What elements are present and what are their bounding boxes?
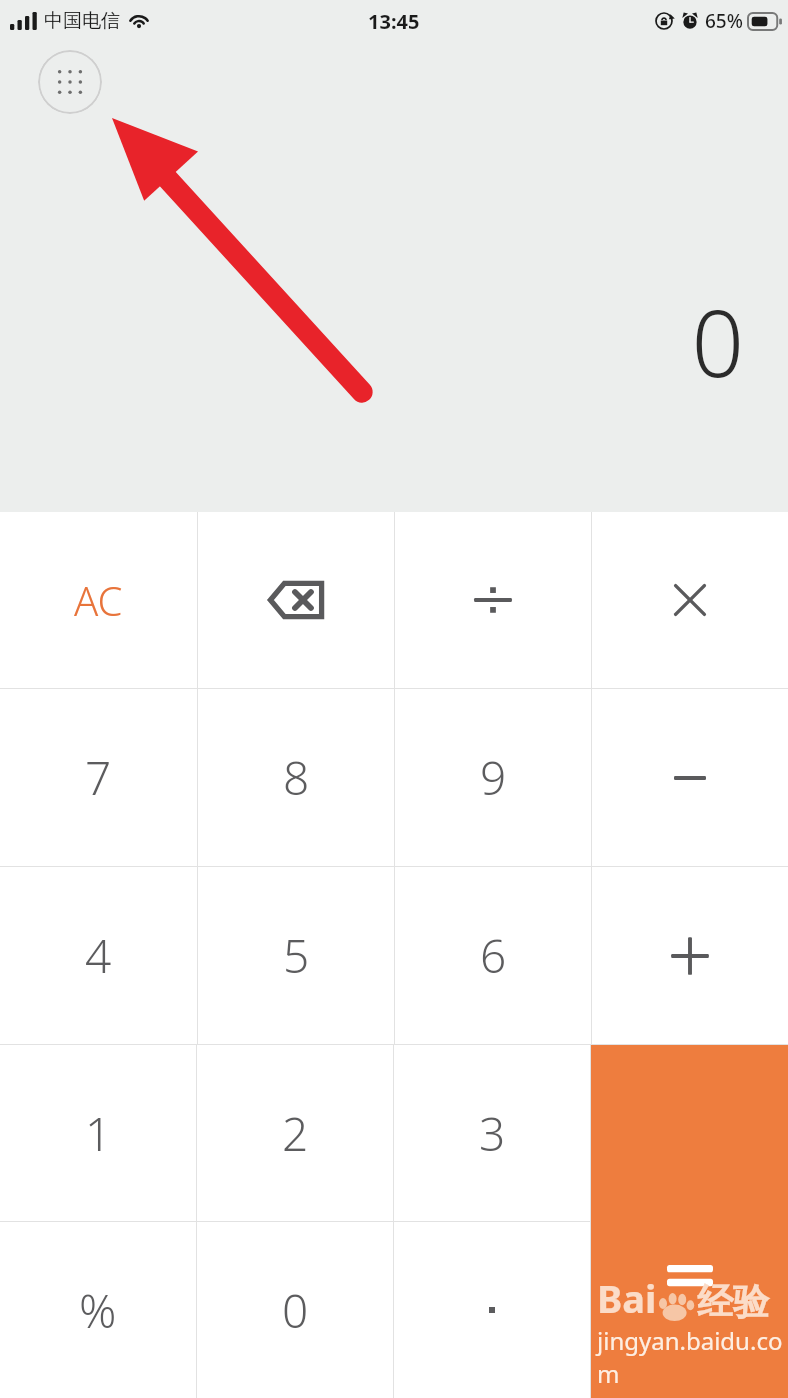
- staticText: 经验: [697, 1279, 769, 1324]
- button[interactable]: AC: [0, 512, 197, 688]
- staticText: 9: [480, 746, 507, 809]
- button[interactable]: 9: [395, 689, 591, 866]
- staticText: 13:45: [368, 8, 420, 35]
- staticText: jingyan.baidu.com: [597, 1324, 788, 1390]
- button[interactable]: 2: [197, 1045, 393, 1221]
- staticText: 8: [283, 746, 310, 809]
- button[interactable]: Equals: [591, 1045, 788, 1398]
- button[interactable]: Minus: [592, 689, 788, 866]
- staticText: 6: [480, 924, 507, 987]
- staticText: 0: [282, 1279, 309, 1342]
- button[interactable]: 6: [395, 867, 591, 1044]
- staticText: 3: [479, 1102, 506, 1165]
- button[interactable]: 8: [198, 689, 394, 866]
- staticText: 5: [283, 924, 310, 987]
- button[interactable]: Multiply: [592, 512, 788, 688]
- button[interactable]: Divide: [395, 512, 591, 688]
- button[interactable]: [394, 1222, 590, 1398]
- button[interactable]: Backspace: [198, 512, 394, 688]
- button[interactable]: 4: [0, 867, 197, 1044]
- staticText: 2: [282, 1102, 309, 1165]
- staticText: 中国电信: [44, 9, 120, 33]
- staticText: 65%: [705, 8, 743, 34]
- staticText: 0: [691, 279, 744, 404]
- staticText: AC: [74, 573, 123, 627]
- button[interactable]: Plus: [592, 867, 788, 1044]
- button[interactable]: Apps: [38, 50, 102, 114]
- button[interactable]: 0: [197, 1222, 393, 1398]
- button[interactable]: 5: [198, 867, 394, 1044]
- button[interactable]: 1: [0, 1045, 196, 1221]
- button[interactable]: %: [0, 1222, 196, 1398]
- staticText: 7: [85, 746, 112, 809]
- button[interactable]: 3: [394, 1045, 590, 1221]
- staticText: Bai: [597, 1272, 657, 1324]
- staticText: 4: [85, 924, 112, 987]
- staticText: 1: [85, 1102, 112, 1165]
- button[interactable]: 7: [0, 689, 197, 866]
- staticText: %: [79, 1279, 117, 1342]
